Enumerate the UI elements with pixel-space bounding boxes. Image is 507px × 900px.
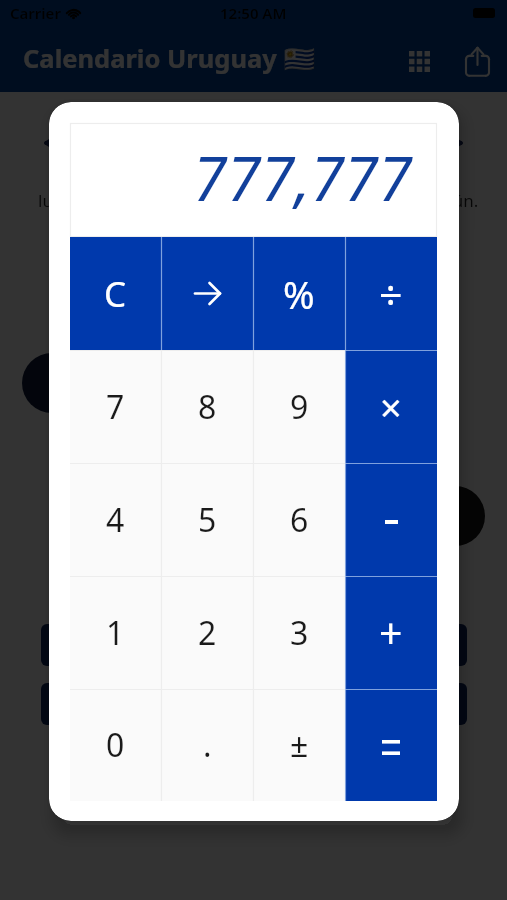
staticText: 6 xyxy=(290,498,309,542)
staticText: 1 xyxy=(106,611,125,655)
button[interactable]: 4 xyxy=(70,463,161,576)
button[interactable]: . xyxy=(161,689,253,801)
staticText: . xyxy=(203,723,212,767)
staticText: × xyxy=(380,381,402,433)
staticText: 9 xyxy=(290,385,309,429)
button[interactable]: 9 xyxy=(253,350,345,463)
button[interactable]: + xyxy=(345,576,437,689)
button[interactable] xyxy=(345,689,437,801)
button[interactable]: Apps xyxy=(399,41,439,81)
button[interactable]: Previous xyxy=(36,125,72,161)
button[interactable]: Day xyxy=(22,353,82,413)
staticText: 777,777 xyxy=(193,135,413,219)
staticText: Carrier xyxy=(10,3,61,23)
staticText: lunes 6 de enero – Día de Reyes Magos, f… xyxy=(38,189,479,212)
staticText: + xyxy=(379,605,403,661)
button[interactable]: 7 xyxy=(70,350,161,463)
button[interactable]: Share xyxy=(457,41,497,81)
button[interactable]: C xyxy=(70,237,161,350)
button[interactable]: Next xyxy=(435,125,471,161)
button[interactable]: ± xyxy=(253,689,345,801)
staticText: 3 xyxy=(290,611,309,655)
button[interactable]: 6 xyxy=(253,463,345,576)
staticText: 7 xyxy=(106,385,125,429)
button[interactable]: ÷ xyxy=(345,237,437,350)
staticText: 0 xyxy=(106,723,125,767)
button[interactable] xyxy=(41,683,467,725)
staticText: ÷ xyxy=(379,266,403,322)
staticText: % xyxy=(283,268,315,320)
staticText: 8 xyxy=(198,385,217,429)
button[interactable]: 1 xyxy=(70,576,161,689)
staticText: 5 xyxy=(198,498,217,542)
button[interactable]: 5 xyxy=(161,463,253,576)
button[interactable]: % xyxy=(253,237,345,350)
staticText: 12:50 AM xyxy=(220,3,287,23)
staticText: 4 xyxy=(106,498,125,542)
staticText: C xyxy=(104,270,127,318)
button[interactable]: 0 xyxy=(70,689,161,801)
button[interactable]: 8 xyxy=(161,350,253,463)
staticText: Calendario Uruguay 🇺🇾 xyxy=(23,41,316,76)
button[interactable] xyxy=(161,237,253,350)
staticText: ± xyxy=(290,723,309,767)
staticText: 2 xyxy=(198,611,217,655)
button[interactable] xyxy=(345,463,437,576)
button[interactable] xyxy=(41,624,467,666)
button[interactable]: 2 xyxy=(161,576,253,689)
button[interactable]: × xyxy=(345,350,437,463)
button[interactable]: 3 xyxy=(253,576,345,689)
